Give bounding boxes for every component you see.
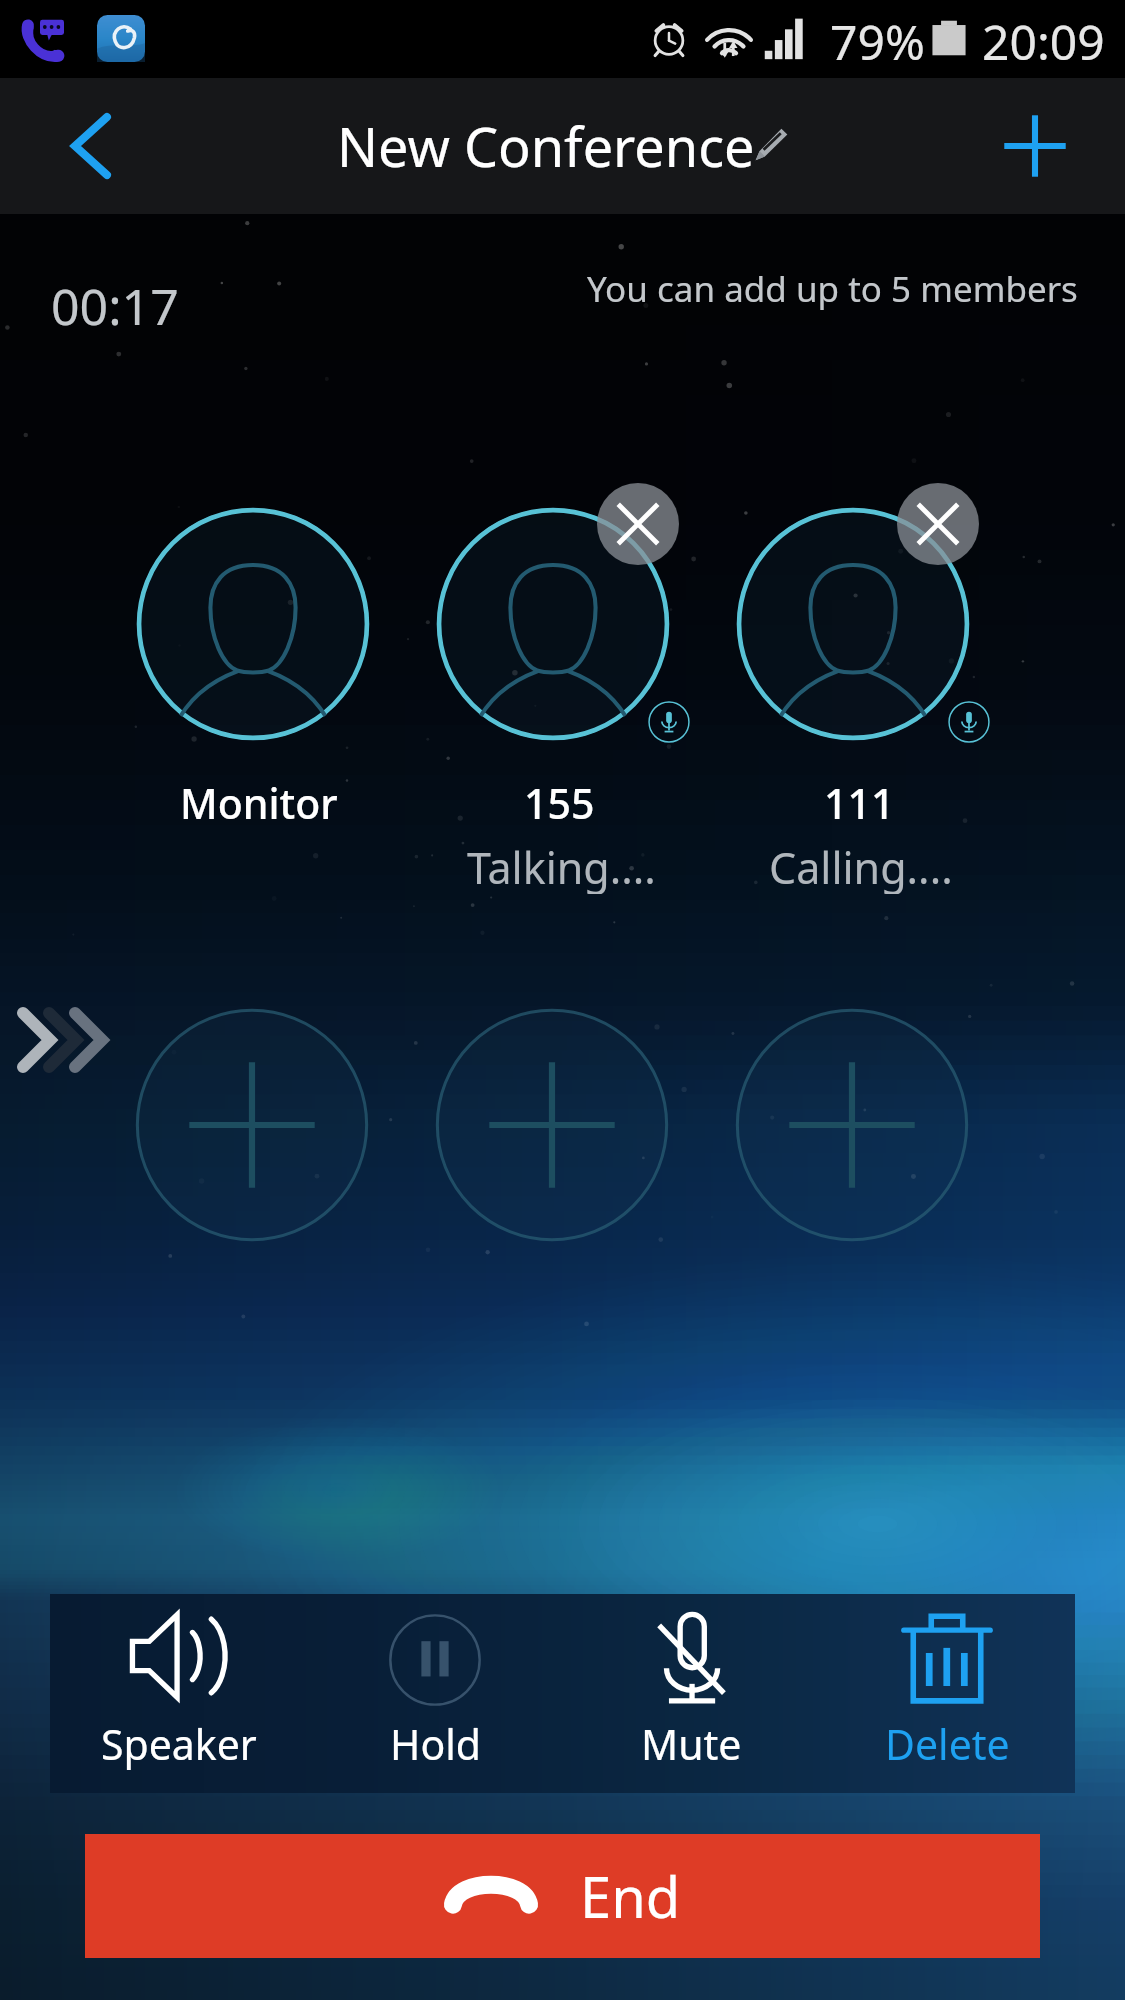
button[interactable]: Speaker — [50, 1594, 307, 1793]
staticText: Monitor — [180, 775, 338, 831]
button[interactable]: Add participant — [735, 1008, 969, 1242]
button[interactable]: New Conference — [337, 109, 788, 183]
button[interactable]: Add participant — [135, 1008, 369, 1242]
staticText: 00:17 — [51, 272, 179, 340]
staticText: Speaker — [101, 1716, 257, 1770]
staticText: Talking.... — [467, 838, 656, 894]
button[interactable]: Remove 111 — [897, 483, 979, 565]
staticText: Delete — [885, 1716, 1010, 1770]
staticText: Calling.... — [769, 838, 953, 894]
staticText: Hold — [390, 1716, 481, 1770]
staticText: 79% — [830, 9, 925, 69]
button[interactable]: Participant 111 — [736, 507, 970, 741]
staticText: New Conference — [337, 109, 755, 183]
button[interactable]: Participant 155 — [436, 507, 670, 741]
staticText: End — [580, 1858, 681, 1934]
staticText: Mute — [641, 1716, 742, 1770]
staticText: 155 — [524, 775, 595, 831]
button[interactable]: Add participant — [435, 1008, 669, 1242]
staticText: 20:09 — [982, 9, 1105, 69]
staticText: You can add up to 5 members — [587, 265, 1078, 313]
button[interactable]: End — [85, 1834, 1040, 1958]
button[interactable]: Participant Monitor — [136, 507, 370, 741]
staticText: 111 — [824, 775, 895, 831]
button[interactable]: Delete — [819, 1594, 1075, 1793]
button[interactable]: Mute — [563, 1594, 819, 1793]
button[interactable]: Add member — [967, 78, 1103, 214]
button[interactable]: Remove 155 — [597, 483, 679, 565]
button[interactable]: Back — [20, 78, 162, 214]
button[interactable]: Hold — [307, 1594, 563, 1793]
